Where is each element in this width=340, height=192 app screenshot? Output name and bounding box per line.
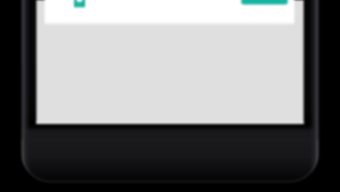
button[interactable]: Shopping basket <box>74 0 85 8</box>
button[interactable]: Install <box>241 0 288 5</box>
button[interactable]: App details <box>36 23 304 124</box>
